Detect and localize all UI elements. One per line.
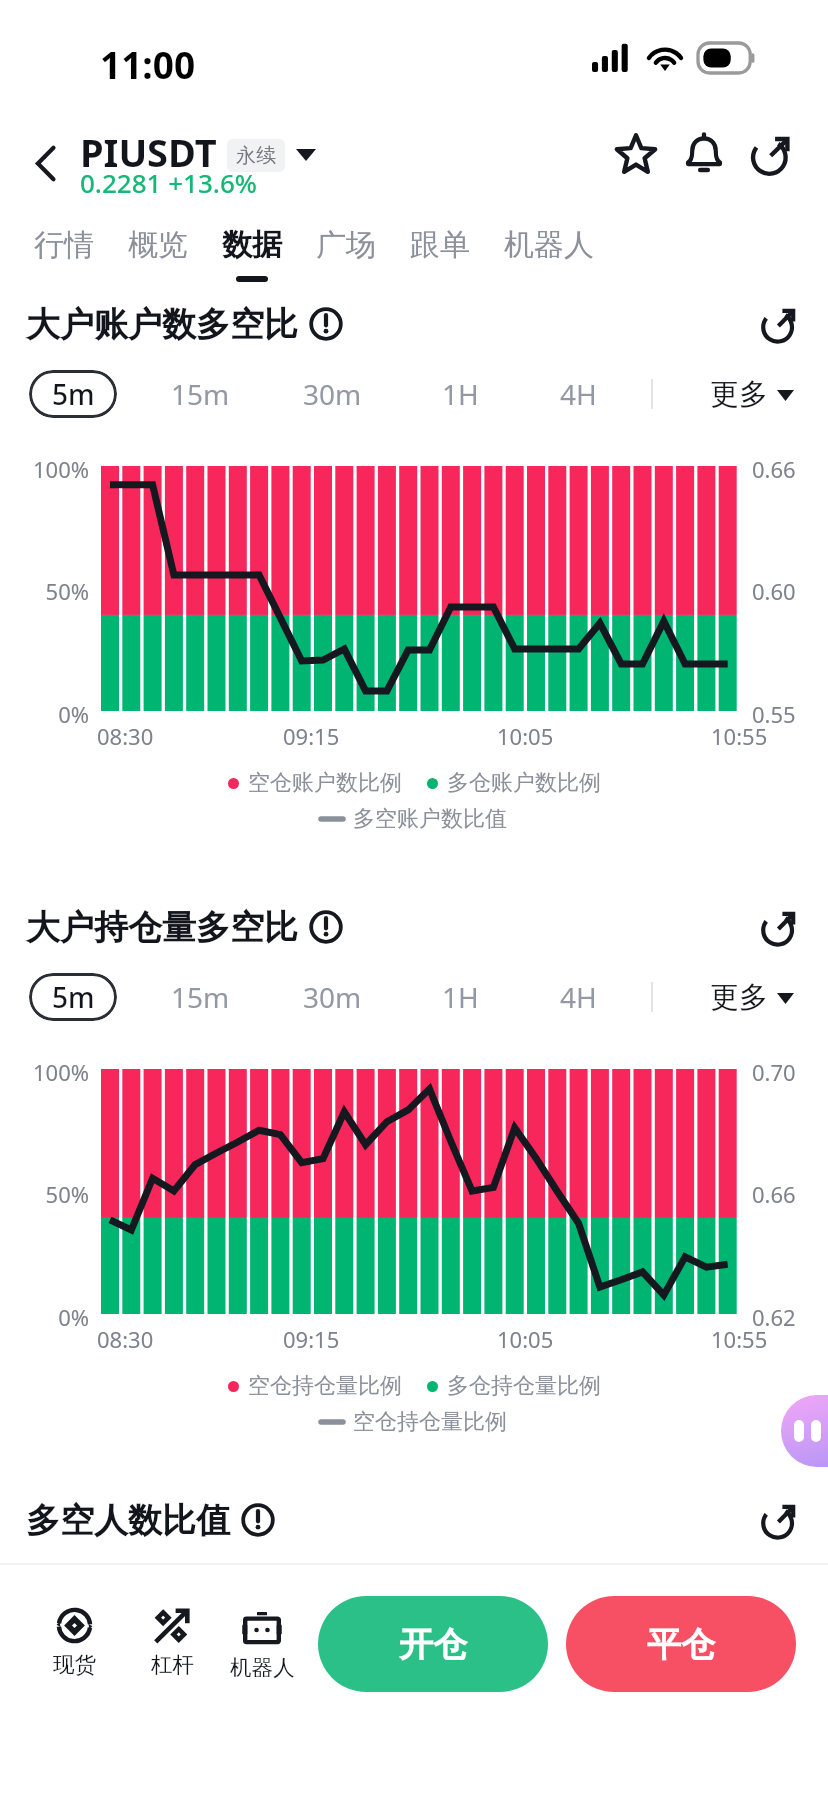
button[interactable]: AI assistant <box>781 1395 828 1467</box>
staticText: 09:15 <box>283 721 340 751</box>
button[interactable]: 30m <box>282 370 382 418</box>
staticText: 0.66 <box>752 454 796 484</box>
staticText: 30m <box>303 375 362 413</box>
staticText: 杠杆 <box>151 1651 194 1678</box>
button[interactable]: 机器人 <box>216 1606 308 1681</box>
button[interactable]: Notifications <box>672 122 736 186</box>
staticText: 0.55 <box>752 699 796 729</box>
staticText: 跟单 <box>410 226 470 264</box>
staticText: 概览 <box>128 226 188 264</box>
button[interactable]: 4H <box>538 370 618 418</box>
staticText: 10:55 <box>711 1324 768 1354</box>
staticText: 多空账户数比值 <box>353 805 507 833</box>
staticText: 广场 <box>316 226 376 264</box>
button[interactable]: Back <box>16 134 74 192</box>
staticText: 多空人数比值 <box>26 1499 230 1542</box>
staticText: 50% <box>0 1179 89 1209</box>
button[interactable]: Share <box>740 122 804 186</box>
staticText: 0% <box>0 699 89 729</box>
button[interactable]: 15m <box>150 973 250 1021</box>
button[interactable]: 概览 <box>128 226 188 282</box>
staticText: 30m <box>303 978 362 1016</box>
staticText: 1H <box>442 375 479 413</box>
staticText: 大户持仓量多空比 <box>26 906 298 949</box>
staticText: 多仓持仓量比例 <box>447 1372 601 1400</box>
staticText: 多仓账户数比例 <box>447 769 601 797</box>
button[interactable]: Expand chart <box>754 298 806 350</box>
button[interactable]: 5m <box>29 973 117 1021</box>
staticText: 永续 <box>236 143 276 168</box>
staticText: 08:30 <box>97 1324 154 1354</box>
staticText: 大户账户数多空比 <box>26 303 298 346</box>
staticText: 15m <box>171 375 230 413</box>
staticText: 0.60 <box>752 576 796 606</box>
staticText: 15m <box>171 978 230 1016</box>
staticText: 空仓账户数比例 <box>248 769 402 797</box>
button[interactable]: 跟单 <box>410 226 470 282</box>
staticText: 0% <box>0 1302 89 1332</box>
staticText: 4H <box>560 978 597 1016</box>
staticText: 08:30 <box>97 721 154 751</box>
staticText: 行情 <box>34 226 94 264</box>
staticText: 0.62 <box>752 1302 796 1332</box>
button[interactable]: 开仓 <box>318 1596 548 1692</box>
staticText: 现货 <box>53 1651 96 1678</box>
staticText: 0.66 <box>752 1179 796 1209</box>
button[interactable]: 1H <box>420 973 500 1021</box>
staticText: 100% <box>0 1057 89 1087</box>
staticText: 更多 <box>710 376 768 413</box>
button[interactable]: 机器人 <box>504 226 594 282</box>
button[interactable]: 更多 <box>702 370 802 418</box>
button[interactable]: 行情 <box>34 226 94 282</box>
button[interactable]: 4H <box>538 973 618 1021</box>
staticText: 更多 <box>710 979 768 1016</box>
button[interactable]: Expand chart <box>754 1494 806 1546</box>
staticText: 11:00 <box>100 39 196 89</box>
staticText: 5m <box>52 375 95 413</box>
button[interactable]: 平仓 <box>566 1596 796 1692</box>
staticText: 开仓 <box>399 1623 467 1666</box>
staticText: PIUSDT <box>80 126 217 178</box>
button[interactable]: 广场 <box>316 226 376 282</box>
staticText: 1H <box>442 978 479 1016</box>
staticText: 10:55 <box>711 721 768 751</box>
staticText: 空仓持仓量比例 <box>353 1408 507 1436</box>
staticText: 数据 <box>222 226 282 264</box>
button[interactable]: 数据 <box>222 226 282 282</box>
button[interactable]: 更多 <box>702 973 802 1021</box>
button[interactable]: 杠杆 <box>126 1606 218 1678</box>
button[interactable]: 现货 <box>28 1606 120 1678</box>
staticText: 平仓 <box>647 1623 715 1666</box>
button[interactable]: 30m <box>282 973 382 1021</box>
staticText: 空仓持仓量比例 <box>248 1372 402 1400</box>
staticText: 0.70 <box>752 1057 796 1087</box>
button[interactable]: 15m <box>150 370 250 418</box>
button[interactable]: Expand chart <box>754 901 806 953</box>
staticText: 10:05 <box>497 721 554 751</box>
staticText: 5m <box>52 978 95 1016</box>
staticText: 100% <box>0 454 89 484</box>
staticText: 机器人 <box>504 226 594 264</box>
staticText: 0.2281 +13.6% <box>80 165 257 200</box>
button[interactable]: 1H <box>420 370 500 418</box>
staticText: 4H <box>560 375 597 413</box>
staticText: 09:15 <box>283 1324 340 1354</box>
staticText: 机器人 <box>230 1654 295 1681</box>
staticText: 10:05 <box>497 1324 554 1354</box>
button[interactable]: Favorite <box>604 122 668 186</box>
button[interactable]: 5m <box>29 370 117 418</box>
staticText: 50% <box>0 576 89 606</box>
